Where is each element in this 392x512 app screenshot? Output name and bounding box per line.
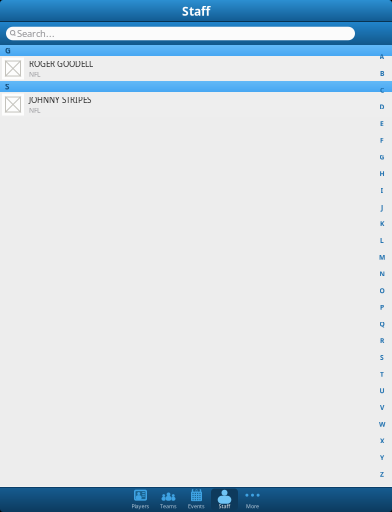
staticText: T bbox=[380, 370, 384, 378]
button[interactable]: V bbox=[376, 399, 388, 416]
staticText: B bbox=[380, 69, 384, 78]
button[interactable]: N bbox=[376, 265, 388, 282]
button[interactable]: D bbox=[376, 98, 388, 115]
button[interactable]: G bbox=[376, 149, 388, 165]
staticText: U bbox=[379, 386, 384, 395]
staticText: S bbox=[5, 81, 9, 92]
image bbox=[5, 96, 21, 112]
staticText: Z bbox=[380, 470, 384, 479]
staticText: D bbox=[379, 102, 384, 111]
button[interactable]: I bbox=[376, 182, 388, 199]
button[interactable]: P bbox=[376, 299, 388, 316]
staticText: X bbox=[380, 436, 384, 445]
button[interactable]: A bbox=[376, 48, 388, 65]
staticText: JOHNNY STRIPES bbox=[29, 94, 91, 105]
staticText: NFL bbox=[29, 70, 40, 78]
button[interactable]: Z bbox=[376, 466, 388, 483]
button[interactable]: Events bbox=[182, 486, 210, 512]
staticText: More bbox=[246, 503, 259, 510]
button[interactable]: H bbox=[376, 165, 388, 182]
staticText: N bbox=[379, 269, 384, 278]
staticText: NFL bbox=[29, 106, 40, 114]
button[interactable]: C bbox=[376, 82, 388, 98]
staticText: G bbox=[379, 152, 384, 161]
button[interactable]: O bbox=[376, 282, 388, 299]
staticText: A bbox=[379, 52, 384, 61]
staticText: F bbox=[380, 136, 384, 145]
staticText: Y bbox=[380, 453, 384, 462]
image bbox=[5, 60, 21, 76]
button[interactable]: E bbox=[376, 115, 388, 132]
button[interactable]: Y bbox=[376, 449, 388, 466]
staticText: Staff bbox=[182, 3, 210, 19]
button[interactable]: W bbox=[376, 416, 388, 432]
staticText: S bbox=[380, 353, 384, 362]
button[interactable]: JOHNNY STRIPES bbox=[0, 92, 392, 117]
staticText: R bbox=[380, 336, 384, 345]
button[interactable]: B bbox=[376, 65, 388, 82]
button[interactable]: Q bbox=[376, 316, 388, 332]
button[interactable]: Players bbox=[126, 486, 154, 512]
button[interactable]: Teams bbox=[154, 486, 182, 512]
button[interactable]: F bbox=[376, 132, 388, 149]
staticText: P bbox=[380, 303, 384, 312]
staticText: Search... bbox=[17, 27, 55, 40]
button[interactable]: More bbox=[238, 486, 266, 512]
button[interactable]: J bbox=[376, 199, 388, 215]
staticText: O bbox=[379, 286, 384, 295]
button[interactable]: ROGER GOODELL bbox=[0, 56, 392, 81]
staticText: ROGER GOODELL bbox=[29, 58, 93, 69]
staticText: K bbox=[380, 219, 384, 228]
staticText: H bbox=[379, 169, 384, 178]
staticText: Staff bbox=[218, 503, 230, 510]
staticText: Q bbox=[379, 319, 384, 328]
button[interactable]: U bbox=[376, 382, 388, 399]
button[interactable]: R bbox=[376, 332, 388, 349]
staticText: M bbox=[379, 253, 385, 262]
button[interactable]: S bbox=[376, 349, 388, 366]
staticText: J bbox=[381, 203, 383, 211]
button[interactable]: M bbox=[376, 249, 388, 265]
staticText: Events bbox=[188, 503, 205, 510]
staticText: L bbox=[380, 236, 384, 245]
staticText: G bbox=[5, 45, 11, 56]
button[interactable]: L bbox=[376, 232, 388, 249]
staticText: C bbox=[380, 86, 384, 95]
staticText: W bbox=[379, 420, 385, 429]
staticText: Players bbox=[131, 503, 149, 510]
button[interactable]: X bbox=[376, 432, 388, 449]
staticText: I bbox=[380, 186, 383, 195]
staticText: Teams bbox=[160, 503, 177, 510]
staticText: E bbox=[380, 119, 384, 128]
button[interactable]: K bbox=[376, 215, 388, 232]
button[interactable]: Staff bbox=[210, 486, 238, 512]
button[interactable]: T bbox=[376, 366, 388, 382]
staticText: V bbox=[380, 403, 384, 412]
